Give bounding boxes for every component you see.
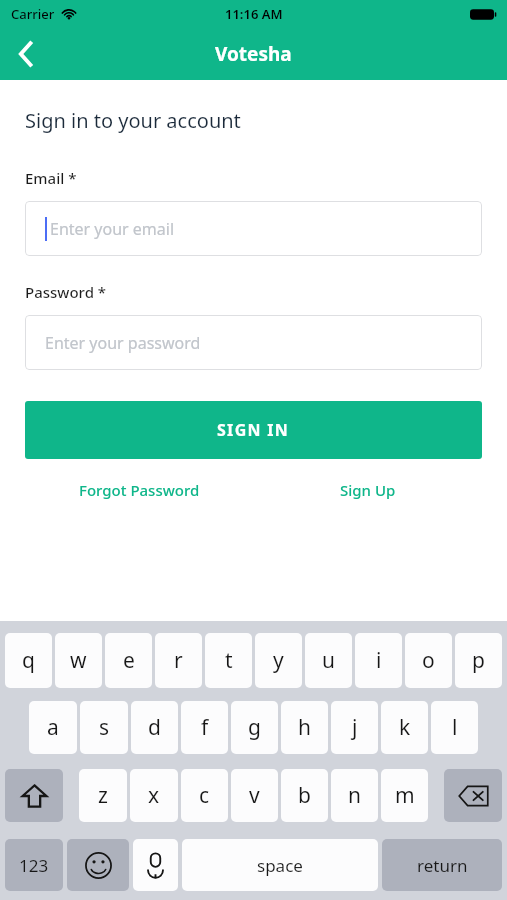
button[interactable]: Sign Up — [253, 480, 482, 500]
staticText: x — [148, 781, 160, 810]
staticText: k — [399, 713, 411, 742]
button[interactable]: t — [205, 633, 252, 688]
staticText: 123 — [19, 854, 49, 877]
staticText: c — [199, 781, 210, 810]
button[interactable]: x — [130, 769, 178, 822]
staticText: n — [348, 781, 361, 810]
staticText: i — [376, 646, 382, 675]
button[interactable]: v — [231, 769, 278, 822]
button[interactable]: j — [331, 701, 378, 754]
button[interactable]: u — [305, 633, 352, 688]
button[interactable]: f — [181, 701, 228, 754]
button[interactable]: y — [255, 633, 302, 688]
button[interactable]: Backspace — [444, 769, 502, 822]
staticText: z — [98, 781, 108, 810]
staticText: Forgot Password — [79, 480, 200, 500]
staticText: u — [322, 646, 335, 675]
button[interactable]: Enter your email — [25, 201, 482, 256]
button[interactable]: space — [182, 839, 378, 891]
button[interactable]: return — [382, 839, 502, 891]
button[interactable]: Back — [0, 28, 52, 80]
staticText: m — [395, 781, 415, 810]
staticText: g — [248, 713, 261, 742]
staticText: a — [47, 713, 59, 742]
staticText: Sign in to your account — [25, 107, 241, 134]
staticText: Password * — [25, 282, 107, 302]
staticText: t — [225, 646, 233, 675]
button[interactable]: n — [331, 769, 378, 822]
staticText: y — [273, 646, 284, 675]
staticText: SIGN IN — [217, 419, 290, 441]
button[interactable]: d — [131, 701, 178, 754]
button[interactable]: b — [281, 769, 328, 822]
button[interactable]: p — [455, 633, 502, 688]
button[interactable]: s — [80, 701, 128, 754]
button[interactable]: 123 — [5, 839, 63, 891]
staticText: q — [22, 646, 35, 675]
button[interactable]: Forgot Password — [25, 480, 253, 500]
button[interactable]: i — [355, 633, 402, 688]
staticText: j — [352, 713, 358, 742]
button[interactable]: Emoji — [67, 839, 129, 891]
staticText: v — [249, 781, 260, 810]
button[interactable]: r — [155, 633, 202, 688]
staticText: w — [70, 646, 87, 675]
button[interactable]: l — [431, 701, 478, 754]
staticText: r — [174, 646, 183, 675]
button[interactable]: q — [5, 633, 52, 688]
staticText: b — [298, 781, 311, 810]
staticText: 11:16 AM — [225, 5, 283, 23]
staticText: s — [99, 713, 110, 742]
staticText: Enter your password — [45, 332, 201, 354]
staticText: p — [472, 646, 485, 675]
button[interactable]: a — [29, 701, 77, 754]
button[interactable]: Dictation — [133, 839, 178, 891]
button[interactable]: g — [231, 701, 278, 754]
button[interactable]: o — [405, 633, 452, 688]
staticText: Email * — [25, 168, 77, 188]
staticText: Carrier — [11, 5, 55, 23]
button[interactable]: SIGN IN — [25, 401, 482, 459]
staticText: d — [148, 713, 161, 742]
button[interactable]: w — [55, 633, 102, 688]
button[interactable]: z — [79, 769, 127, 822]
staticText: Enter your email — [50, 218, 175, 240]
button[interactable]: Shift — [5, 769, 63, 822]
staticText: f — [201, 713, 209, 742]
staticText: return — [417, 854, 468, 877]
button[interactable]: h — [281, 701, 328, 754]
button[interactable]: k — [381, 701, 428, 754]
button[interactable]: Enter your password — [25, 315, 482, 370]
button[interactable]: m — [381, 769, 428, 822]
staticText: space — [257, 854, 303, 877]
staticText: Sign Up — [340, 480, 396, 500]
staticText: e — [123, 646, 135, 675]
button[interactable]: c — [181, 769, 228, 822]
staticText: Votesha — [215, 41, 292, 67]
button[interactable]: e — [105, 633, 152, 688]
staticText: h — [298, 713, 311, 742]
staticText: l — [452, 713, 458, 742]
staticText: o — [422, 646, 435, 675]
